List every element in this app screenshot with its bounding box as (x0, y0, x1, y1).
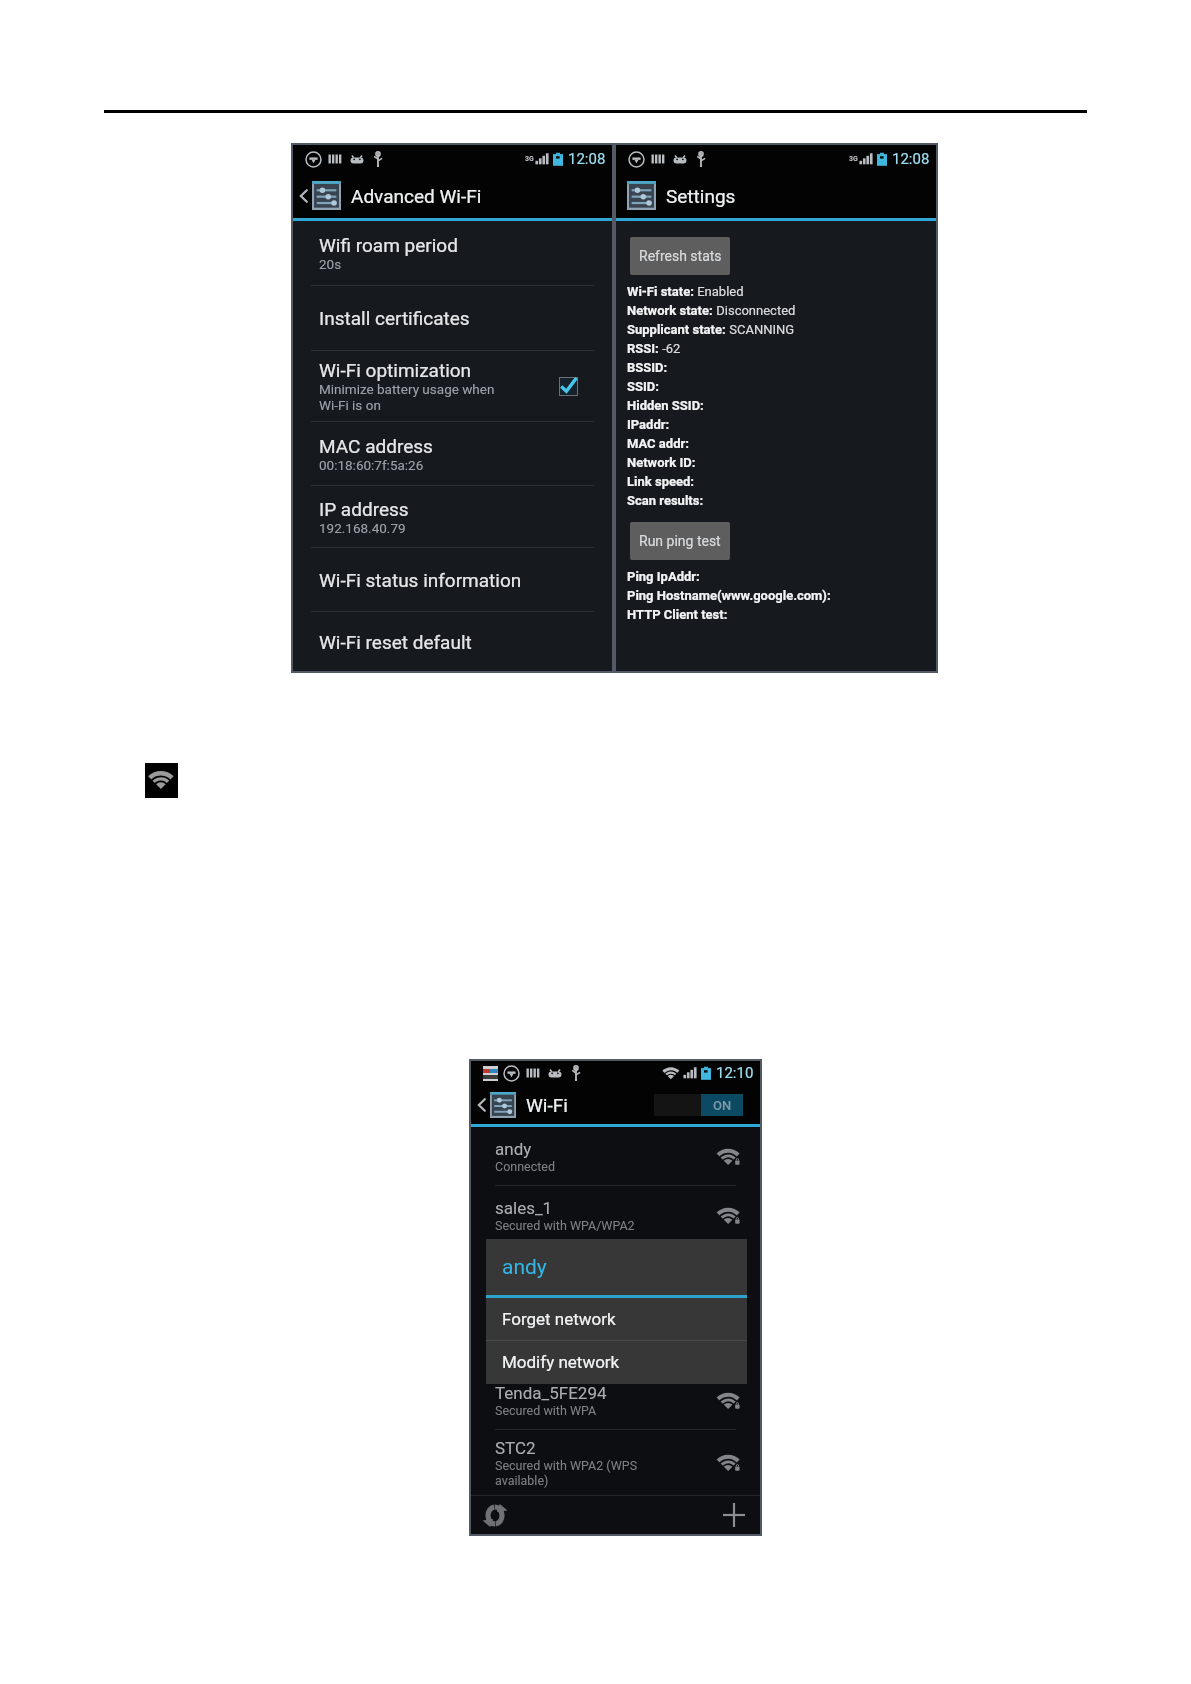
staticText: Secured with WPA/WPA2 (495, 1218, 635, 1233)
staticText: Advanced Wi-Fi (351, 185, 482, 207)
staticText: 3G (525, 155, 534, 163)
staticText: Wifi roam period (319, 234, 458, 256)
staticText: 192.168.40.79 (319, 520, 406, 536)
staticText: SSID: (627, 379, 659, 394)
button[interactable]: Wi-Fi (476, 1085, 568, 1124)
button[interactable]: Wifi roam period (293, 221, 612, 285)
button[interactable]: Run ping test (630, 522, 730, 560)
staticText: andy (495, 1139, 532, 1159)
staticText: Wi-Fi state: (627, 284, 694, 299)
staticText: 12:08 (568, 150, 606, 168)
staticText: Run ping test (639, 533, 721, 549)
button[interactable]: Wi-Fi on/off (654, 1094, 743, 1116)
staticText: sales_1 (495, 1198, 553, 1218)
staticText: Wi-Fi reset default (319, 631, 472, 653)
staticText: IP address (319, 498, 409, 520)
staticText: Enabled (694, 284, 744, 299)
button[interactable]: Add network (722, 1503, 746, 1527)
staticText: STC2 (495, 1438, 536, 1458)
staticText: 12:10 (716, 1064, 754, 1082)
staticText: 20s (319, 256, 342, 272)
staticText: Network state: (627, 303, 713, 318)
staticText: Secured with WPA (495, 1403, 597, 1418)
button[interactable]: MAC address (293, 422, 612, 485)
staticText: Forget network (502, 1309, 616, 1329)
staticText: Wi-Fi (526, 1094, 568, 1116)
button[interactable]: Guest_2G (471, 1245, 760, 1307)
staticText: Ping Hostname(www.google.com): (627, 588, 831, 603)
staticText: Disconnected (713, 303, 796, 318)
staticText: TP-LINK_A12F (495, 1322, 605, 1342)
button[interactable]: Refresh stats (630, 237, 730, 275)
staticText: HTTP Client test: (627, 607, 728, 622)
staticText: SCANNING (726, 322, 795, 337)
staticText: Guest_2G (495, 1259, 569, 1279)
staticText: Minimize battery usage when Wi-Fi is on (319, 381, 495, 413)
button[interactable]: Advanced Wi-Fi (298, 173, 482, 218)
staticText: BSSID: (627, 360, 668, 375)
button[interactable]: sales_1 (471, 1186, 760, 1244)
staticText: IPaddr: (627, 417, 670, 432)
button[interactable]: Forget network (486, 1298, 747, 1340)
staticText: Install certificates (319, 307, 470, 329)
staticText: 00:18:60:7f:5a:26 (319, 457, 424, 473)
staticText: ON (713, 1098, 732, 1113)
staticText: Modify network (502, 1352, 620, 1372)
staticText: Secured with WPA2 (WPS available) (495, 1458, 638, 1488)
staticText: Secured with WPA (495, 1342, 597, 1357)
staticText: 3G (849, 155, 858, 163)
staticText: Hidden SSID: (627, 398, 704, 413)
staticText: Connected (495, 1159, 556, 1174)
button[interactable]: IP address (293, 486, 612, 547)
button[interactable]: Tenda_5FE294 (471, 1371, 760, 1429)
staticText: Network ID: (627, 455, 696, 470)
staticText: MAC address (319, 435, 433, 457)
staticText: Supplicant state: (627, 322, 726, 337)
button[interactable]: andy (471, 1127, 760, 1185)
button[interactable]: Modify network (486, 1341, 747, 1383)
staticText: 12:08 (892, 150, 930, 168)
button[interactable]: TP-LINK_A12F (471, 1308, 760, 1370)
staticText: Wi-Fi status information (319, 569, 522, 591)
staticText: MAC addr: (627, 436, 689, 451)
button[interactable]: Install certificates (293, 286, 612, 350)
staticText: Link speed: (627, 474, 695, 489)
button[interactable]: Wi-Fi optimization (293, 351, 612, 421)
button[interactable]: Wi-Fi reset default (293, 612, 612, 671)
staticText: Tenda_5FE294 (495, 1383, 607, 1403)
staticText: Refresh stats (639, 248, 722, 264)
button[interactable]: Wi-Fi status information (293, 548, 612, 611)
staticText: Ping IpAddr: (627, 569, 700, 584)
staticText: Scan results: (627, 493, 704, 508)
staticText: Settings (666, 185, 736, 207)
staticText: Wi-Fi optimization (319, 359, 472, 381)
button[interactable]: WPS push button (485, 1504, 505, 1527)
staticText: RSSI: (627, 341, 659, 356)
button[interactable]: STC2 (471, 1430, 760, 1495)
button[interactable]: Settings (627, 173, 736, 218)
staticText: andy (502, 1255, 547, 1280)
staticText: -62 (659, 341, 681, 356)
